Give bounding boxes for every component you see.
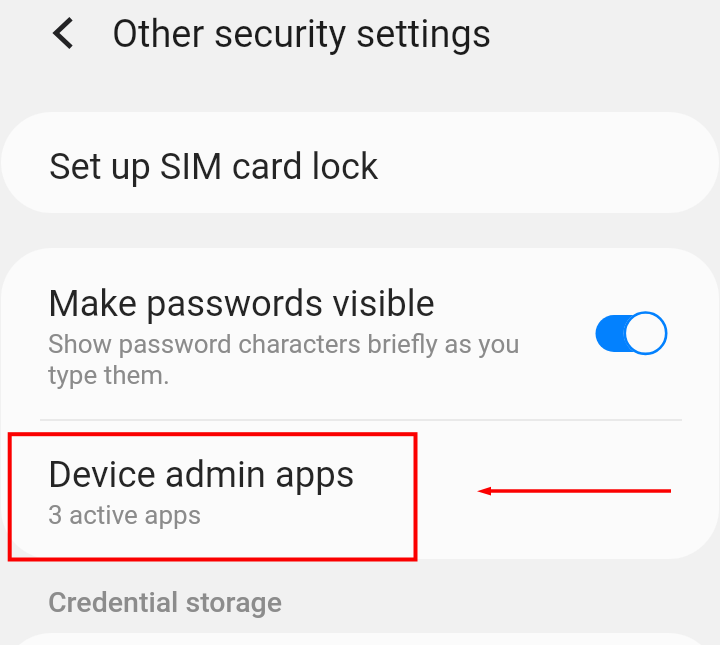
button[interactable]: Device admin apps <box>1 420 719 558</box>
staticText: Set up SIM card lock <box>49 145 379 187</box>
staticText: Other security settings <box>112 12 492 56</box>
button[interactable]: Back <box>41 9 89 57</box>
staticText: Make passwords visible <box>48 282 435 325</box>
staticText: Credential storage <box>48 586 283 619</box>
staticText: Show password characters briefly as you … <box>48 329 538 391</box>
staticText: 3 active apps <box>48 500 202 530</box>
button[interactable]: Set up SIM card lock <box>1 112 719 213</box>
button[interactable]: Make passwords visible <box>1 248 719 419</box>
button[interactable]: Make passwords visible, on <box>593 307 671 359</box>
staticText: Device admin apps <box>48 453 355 496</box>
